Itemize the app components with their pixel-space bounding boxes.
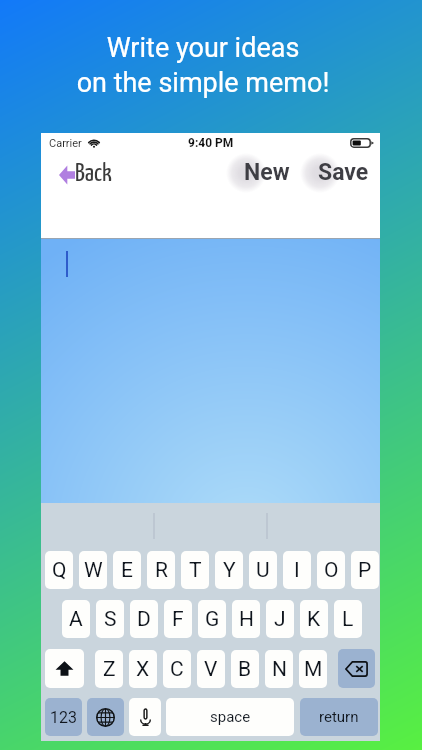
button[interactable]: Y [215, 551, 243, 589]
button[interactable]: V [197, 650, 225, 688]
staticText: Write your ideas on the simple memo! [0, 32, 414, 98]
button[interactable]: 123 [45, 698, 82, 736]
button[interactable]: return [300, 698, 378, 736]
button[interactable]: P [351, 551, 379, 589]
button[interactable]: C [163, 650, 191, 688]
button[interactable]: X [129, 650, 157, 688]
other: Backspace [345, 661, 368, 677]
button[interactable]: K [300, 600, 328, 638]
staticText: S [104, 607, 117, 632]
staticText: New [244, 159, 290, 186]
staticText: F [172, 607, 184, 632]
staticText: Z [103, 657, 116, 682]
staticText: D [137, 607, 151, 632]
staticText: W [84, 558, 103, 583]
button[interactable]: Back [59, 163, 112, 187]
staticText: C [170, 657, 184, 682]
button[interactable]: O [317, 551, 345, 589]
staticText: T [189, 558, 202, 583]
button[interactable]: W [79, 551, 107, 589]
button[interactable]: R [147, 551, 175, 589]
button[interactable]: A [62, 600, 90, 638]
staticText: Save [318, 159, 369, 186]
staticText: U [256, 558, 270, 583]
staticText: N [272, 657, 287, 682]
other: Dictate [140, 708, 151, 726]
staticText: I [294, 558, 300, 583]
button[interactable]: N [265, 650, 293, 688]
staticText: space [210, 708, 251, 726]
staticText: H [239, 607, 254, 632]
button[interactable]: Q [45, 551, 73, 589]
staticText: V [204, 657, 218, 682]
staticText: return [319, 708, 359, 726]
other: Back [59, 165, 75, 185]
button[interactable]: M [299, 650, 327, 688]
staticText: B [238, 657, 252, 682]
staticText: A [69, 607, 83, 632]
staticText: P [358, 558, 372, 583]
button[interactable]: H [232, 600, 260, 638]
other: Change keyboard [96, 708, 115, 727]
button[interactable]: T [181, 551, 209, 589]
button[interactable]: Change keyboard [87, 698, 124, 736]
other: Shift [55, 659, 74, 678]
button[interactable]: S [96, 600, 124, 638]
staticText: Carrier [49, 137, 82, 150]
other: Wi-Fi [88, 138, 100, 148]
button[interactable]: New [222, 142, 299, 204]
button[interactable]: I [283, 551, 311, 589]
staticText: K [307, 607, 321, 632]
staticText: R [155, 558, 168, 583]
button[interactable]: D [130, 600, 158, 638]
button[interactable]: Shift [45, 649, 84, 688]
button[interactable]: Dictate [129, 698, 161, 736]
staticText: M [304, 657, 323, 682]
staticText: L [342, 607, 354, 632]
button[interactable]: F [164, 600, 192, 638]
button[interactable]: L [334, 600, 362, 638]
button[interactable]: Save [296, 142, 375, 204]
button[interactable]: Backspace [338, 649, 375, 688]
staticText: 123 [50, 708, 77, 727]
staticText: Y [223, 558, 236, 583]
button[interactable]: B [231, 650, 259, 688]
staticText: G [205, 607, 220, 632]
button[interactable]: U [249, 551, 277, 589]
staticText: J [274, 607, 286, 632]
staticText: O [324, 558, 339, 583]
button[interactable]: space [166, 698, 294, 736]
staticText: 9:40 PM [188, 136, 234, 150]
staticText: Q [52, 558, 67, 583]
staticText: X [136, 657, 150, 682]
button[interactable] [41, 239, 380, 503]
button[interactable]: G [198, 600, 226, 638]
button[interactable]: E [113, 551, 141, 589]
button[interactable]: Z [95, 650, 123, 688]
button[interactable]: J [266, 600, 294, 638]
staticText: Back [75, 162, 112, 186]
staticText: E [121, 558, 133, 583]
